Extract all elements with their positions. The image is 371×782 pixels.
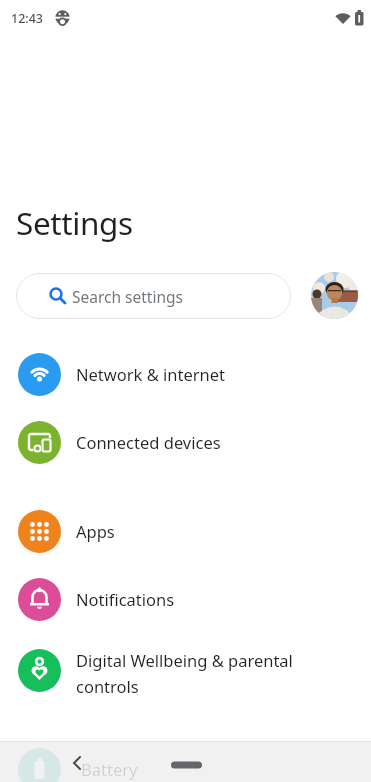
staticText: Connected devices bbox=[76, 431, 221, 453]
button[interactable]: Notifications bbox=[0, 565, 371, 633]
button[interactable]: Battery bbox=[0, 736, 371, 782]
button[interactable]: Digital Wellbeing & parental bbox=[0, 633, 371, 725]
staticText: Notifications bbox=[76, 588, 175, 610]
staticText: Settings bbox=[16, 201, 133, 244]
staticText: controls bbox=[76, 675, 139, 697]
button[interactable]: Network & internet bbox=[0, 340, 371, 408]
staticText: Digital Wellbeing & parental bbox=[76, 649, 293, 671]
staticText: Search settings bbox=[72, 286, 183, 307]
button[interactable]: Apps bbox=[0, 497, 371, 565]
staticText: Apps bbox=[76, 520, 115, 542]
button[interactable]: Search settings bbox=[16, 273, 291, 319]
button[interactable]: Connected devices bbox=[0, 408, 371, 476]
staticText: 12:43 bbox=[11, 10, 44, 27]
staticText: Network & internet bbox=[76, 363, 226, 385]
staticText: Battery bbox=[81, 758, 138, 780]
button[interactable] bbox=[311, 272, 358, 319]
